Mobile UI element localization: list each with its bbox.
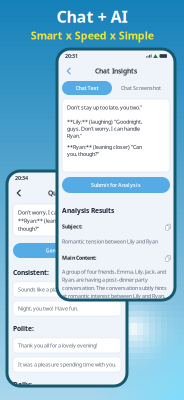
staticText: Night, you two! Have fun. xyxy=(18,305,78,312)
staticText: Daily: xyxy=(13,380,32,389)
button[interactable]: Thank you all for a lovely evening! xyxy=(13,338,121,353)
staticText: Chat Screenshot xyxy=(121,84,161,92)
staticText: 20:31 xyxy=(65,52,78,60)
button[interactable]: It was a pleasure spending time with you… xyxy=(13,357,121,372)
staticText: Chat + AI xyxy=(56,6,127,27)
staticText: Analysis Results xyxy=(62,206,114,215)
staticText: Thank you all for a lovely evening! xyxy=(18,342,97,349)
staticText: Chat Insights xyxy=(95,67,137,75)
staticText: though?" xyxy=(18,225,39,232)
staticText: at romantic interest between Lily and Ry… xyxy=(62,292,165,299)
button[interactable]: Chat Text xyxy=(62,81,112,95)
button[interactable]: Submit for Analysis xyxy=(62,177,170,193)
button[interactable]: Back xyxy=(62,64,76,78)
staticText: It was a pleasure spending time with you… xyxy=(18,361,116,368)
staticText: Smart x Speed x Simple xyxy=(30,28,153,42)
staticText: **Ryan:** (leaning closer) "Can you, xyxy=(18,217,104,224)
staticText: 20:34 xyxy=(15,174,28,182)
staticText: Consistent: xyxy=(13,268,49,277)
staticText: Chat Text xyxy=(75,84,98,92)
staticText: **Ryan:** (leaning closer) "Can xyxy=(67,143,142,150)
staticText: Quick Reply xyxy=(48,189,86,197)
staticText: Generate Replies xyxy=(45,247,88,254)
staticText: Polite: xyxy=(13,324,34,333)
staticText: Ryan." xyxy=(67,132,82,139)
staticText: Main Content: xyxy=(62,254,96,261)
staticText: Ryan, are having a post-dinner party xyxy=(62,276,148,283)
button[interactable]: Sounds like a plan. ;) xyxy=(13,282,121,297)
staticText: Sounds like a plan. ;) xyxy=(18,286,65,293)
button[interactable]: Chat Screenshot xyxy=(112,81,170,95)
staticText: you, though?" xyxy=(67,150,99,157)
button[interactable]: See ya later, I'm beat! xyxy=(13,394,121,400)
button[interactable]: Copy main content xyxy=(164,254,170,261)
staticText: guys. Don't worry, I can handle xyxy=(67,125,140,132)
staticText: Submit for Analysis xyxy=(91,181,141,189)
button[interactable]: Back xyxy=(12,186,26,200)
button[interactable]: Copy subject xyxy=(164,223,170,229)
staticText: A group of four friends, Emma, Lily, Jac… xyxy=(62,268,166,275)
staticText: Romantic tension between Lily and Ryan xyxy=(62,238,158,245)
button[interactable]: Night, you two! Have fun. xyxy=(13,301,121,316)
staticText: Don't stay up too late, you two." xyxy=(67,104,142,111)
staticText: **Lily:** (laughing) "Goodnight, xyxy=(67,118,142,125)
button[interactable]: Generate Replies xyxy=(13,243,121,258)
staticText: Subject: xyxy=(62,223,82,230)
staticText: Don't worry, I can handle Ryan." xyxy=(18,209,93,216)
staticText: conversation. The conversation subtly hi… xyxy=(62,284,167,291)
